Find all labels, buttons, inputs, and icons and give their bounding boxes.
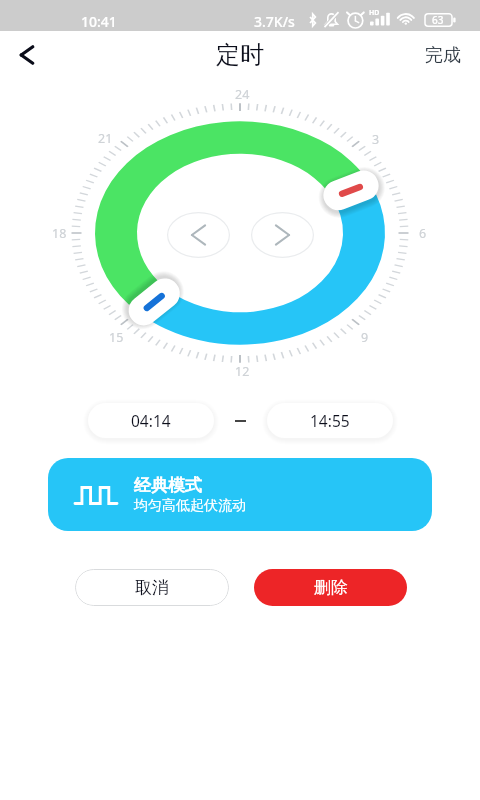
button[interactable]: 14:55 [267, 403, 393, 438]
staticText: 删除 [314, 577, 348, 598]
button[interactable]: Back [0, 31, 56, 79]
staticText: 定时 [216, 40, 264, 70]
button[interactable]: Previous hour [167, 212, 230, 258]
staticText: HD [369, 8, 380, 18]
button[interactable]: Next hour [251, 212, 314, 258]
staticText: 21 [98, 130, 113, 147]
staticText: 3 [372, 131, 380, 148]
staticText: 3.7K/s [254, 12, 295, 31]
button[interactable]: 删除 [254, 569, 407, 606]
staticText: 24 [235, 86, 250, 103]
staticText: 完成 [425, 44, 461, 67]
staticText: 15 [109, 329, 124, 346]
button[interactable]: 取消 [75, 569, 229, 606]
staticText: 均匀高低起伏流动 [134, 497, 246, 515]
staticText: 9 [361, 329, 369, 346]
staticText: 18 [52, 225, 67, 242]
staticText: 04:14 [131, 410, 171, 431]
button[interactable]: 完成 [406, 31, 480, 79]
staticText: 经典模式 [134, 475, 202, 496]
staticText: 63 [432, 13, 444, 27]
staticText: 6 [419, 225, 427, 242]
staticText: 10:41 [81, 12, 117, 31]
staticText: 取消 [135, 577, 169, 598]
button[interactable]: 经典模式 [48, 458, 432, 531]
staticText: 14:55 [310, 410, 350, 431]
staticText: 12 [235, 363, 250, 380]
button[interactable]: 04:14 [88, 403, 214, 438]
